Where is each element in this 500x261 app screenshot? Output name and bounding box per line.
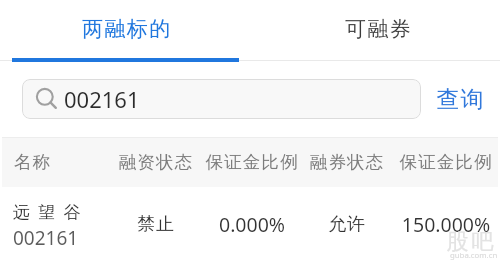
- staticText: 查询: [436, 85, 484, 114]
- staticText: 融券状态: [267, 151, 427, 173]
- staticText: 保证金比例: [172, 151, 332, 173]
- button[interactable]: Search: [22, 79, 421, 119]
- staticText: 002161: [13, 225, 79, 251]
- staticText: 0.000%: [172, 211, 332, 238]
- staticText: 可融券: [345, 16, 413, 42]
- staticText: 融资状态: [76, 151, 236, 173]
- staticText: 允许: [267, 213, 427, 236]
- staticText: guba.com.cn: [450, 250, 498, 261]
- button[interactable]: 两融标的: [0, 0, 250, 62]
- staticText: 150.000%: [366, 211, 500, 238]
- staticText: 002161: [64, 84, 140, 114]
- other: Search: [36, 88, 58, 110]
- staticText: 保证金比例: [366, 151, 500, 173]
- button[interactable]: 可融券: [250, 0, 500, 62]
- staticText: 名称: [14, 151, 52, 173]
- button[interactable]: 远望谷: [0, 187, 500, 261]
- staticText: 股吧: [445, 228, 495, 256]
- staticText: 禁止: [76, 213, 236, 236]
- staticText: 两融标的: [82, 16, 172, 42]
- button[interactable]: 查询: [426, 79, 494, 119]
- staticText: 远望谷: [13, 202, 89, 223]
